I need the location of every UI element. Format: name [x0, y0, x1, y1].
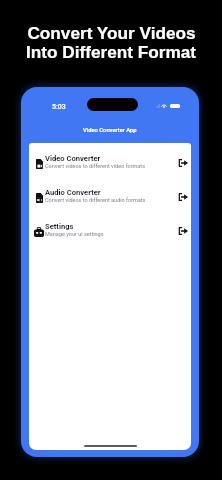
staticText: Video Converter	[45, 154, 101, 163]
button[interactable]: Video Converter	[29, 146, 191, 180]
staticText: Manage your ui settings	[45, 231, 104, 237]
other: Open Audio Converter	[176, 190, 190, 204]
staticText: Convert videos to different audio format…	[45, 197, 146, 203]
staticText: Audio Converter	[45, 188, 101, 197]
staticText: Video Converter App	[83, 127, 137, 134]
other: Open Video Converter	[176, 156, 190, 170]
staticText: Settings	[45, 222, 74, 231]
staticText: Convert Your Videos	[27, 23, 196, 42]
staticText: Convert videos to different video format…	[45, 163, 145, 169]
other: Open Settings	[176, 224, 190, 238]
staticText: Into Different Format	[26, 42, 196, 61]
staticText: 5:03	[52, 103, 66, 111]
button[interactable]: Settings	[29, 214, 191, 248]
button[interactable]: Audio Converter	[29, 180, 191, 214]
